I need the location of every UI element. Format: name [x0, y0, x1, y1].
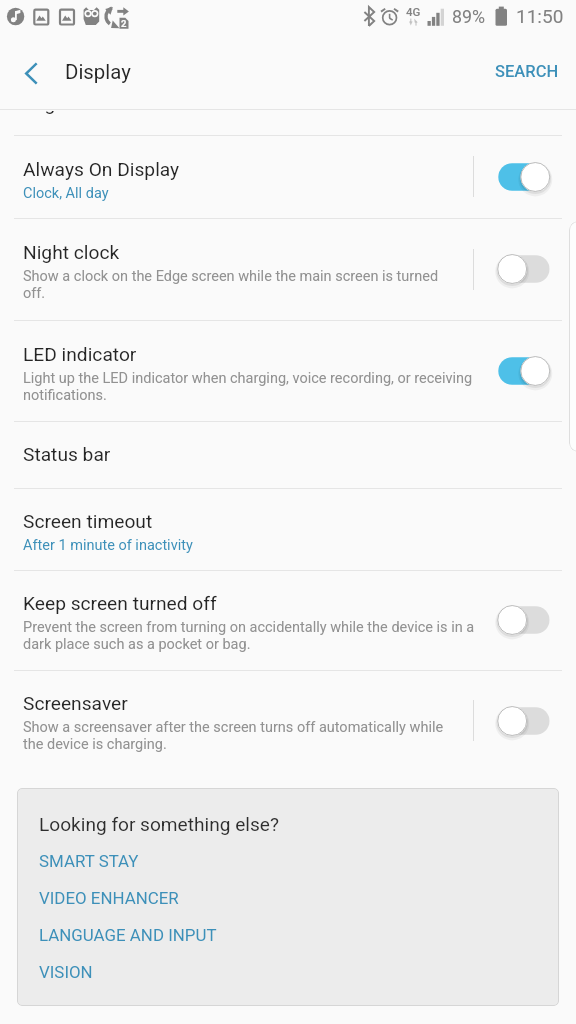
staticText: SMART STAY: [39, 851, 139, 871]
button[interactable]: VIDEO ENHANCER: [27, 881, 191, 915]
staticText: LED indicator: [23, 343, 137, 366]
staticText: Display: [65, 60, 131, 84]
button[interactable]: Navigate up: [5, 49, 57, 97]
button[interactable]: SEARCH: [484, 53, 570, 90]
staticText: Light up the LED indicator when charging…: [23, 370, 543, 404]
staticText: Show a clock on the Edge screen while th…: [23, 268, 543, 302]
button[interactable]: Night clock: [0, 219, 576, 320]
staticText: SEARCH: [495, 62, 559, 81]
staticText: Keep screen turned off: [23, 592, 217, 615]
staticText: Looking for something else?: [39, 813, 279, 835]
staticText: 4G: [406, 5, 421, 18]
staticText: Prevent the screen from turning on accid…: [23, 619, 543, 653]
button[interactable]: Off: [494, 598, 554, 642]
button[interactable]: On: [494, 155, 554, 199]
staticText: After 1 minute of inactivity: [23, 537, 543, 554]
button[interactable]: On: [494, 349, 554, 393]
button[interactable]: Screensaver: [0, 671, 576, 771]
staticText: Show a screensaver after the screen turn…: [23, 719, 543, 753]
staticText: Clock, All day: [23, 185, 543, 202]
button[interactable]: Status bar: [0, 422, 576, 488]
staticText: Edge screen: [23, 92, 128, 115]
button[interactable]: Off: [494, 247, 554, 291]
button[interactable]: Always On Display: [0, 136, 576, 218]
button[interactable]: LED indicator: [0, 321, 576, 421]
button[interactable]: VISION: [27, 955, 105, 989]
staticText: Screensaver: [23, 692, 128, 715]
staticText: VISION: [39, 962, 93, 982]
staticText: 2: [121, 18, 127, 29]
staticText: Screen timeout: [23, 510, 153, 533]
staticText: Status bar: [23, 443, 111, 466]
button[interactable]: LANGUAGE AND INPUT: [27, 918, 229, 952]
button[interactable]: SMART STAY: [27, 844, 151, 878]
button[interactable]: Keep screen turned off: [0, 571, 576, 670]
button[interactable]: Off: [494, 699, 554, 743]
staticText: LANGUAGE AND INPUT: [39, 925, 217, 945]
staticText: Always On Display: [23, 158, 180, 181]
staticText: 11:50: [516, 5, 564, 27]
staticText: VIDEO ENHANCER: [39, 888, 179, 908]
staticText: 89%: [452, 6, 486, 27]
staticText: Night clock: [23, 241, 120, 264]
button[interactable]: Screen timeout: [0, 489, 576, 570]
